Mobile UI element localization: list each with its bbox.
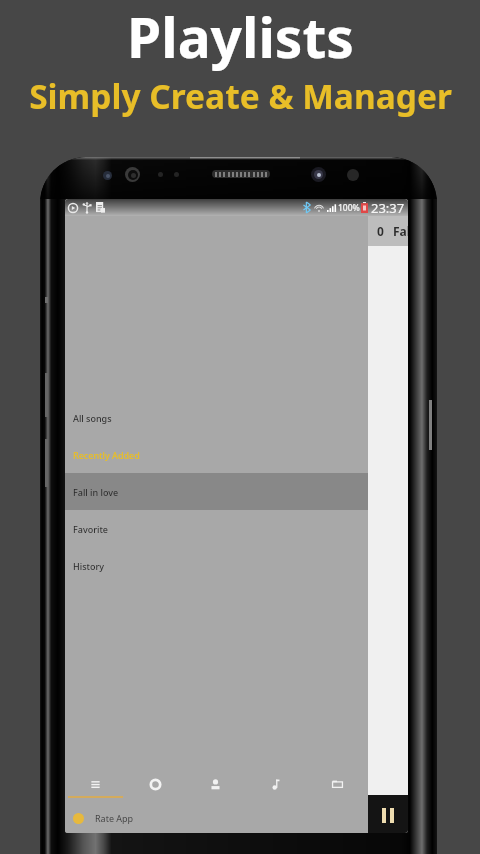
button[interactable]: Pause xyxy=(382,808,394,823)
button[interactable]: Favorite xyxy=(65,510,368,547)
staticText: Simply Create & Manager xyxy=(29,73,452,119)
staticText: Playlists xyxy=(127,0,354,74)
button[interactable]: History xyxy=(65,547,368,584)
button[interactable]: Albums xyxy=(125,765,185,803)
staticText: 0 xyxy=(377,223,384,239)
staticText: Favorite xyxy=(73,523,108,535)
button[interactable]: Recently Added xyxy=(65,436,368,473)
button[interactable]: Artists xyxy=(185,765,246,803)
button[interactable]: Fall in love xyxy=(65,473,368,510)
button[interactable]: Playlists xyxy=(65,765,125,803)
button[interactable]: Songs xyxy=(246,765,307,803)
staticText: Recently Added xyxy=(73,449,140,461)
staticText: History xyxy=(73,560,105,572)
button[interactable]: Folders xyxy=(307,765,368,803)
staticText: Fall in love xyxy=(393,223,408,239)
staticText: Rate App xyxy=(95,812,134,824)
staticText: 100% xyxy=(338,202,360,214)
button[interactable]: All songs xyxy=(65,399,368,436)
staticText: All songs xyxy=(73,412,112,424)
staticText: 23:37 xyxy=(371,199,405,216)
button[interactable]: Rate App xyxy=(65,803,368,833)
staticText: Fall in love xyxy=(73,486,119,498)
